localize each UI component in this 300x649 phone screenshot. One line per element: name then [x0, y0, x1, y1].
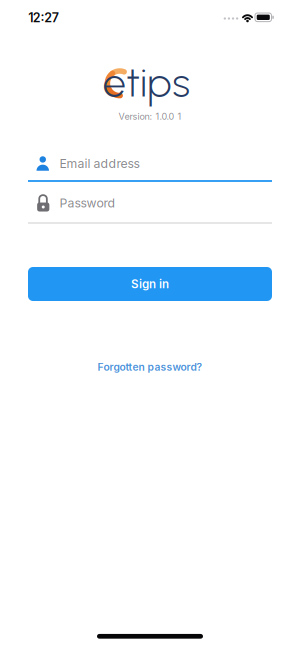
button[interactable]: Email address — [35, 154, 271, 172]
button[interactable]: Forgotten password? — [97, 361, 202, 373]
button[interactable]: Password — [35, 194, 271, 212]
button[interactable]: Sign in — [28, 267, 272, 301]
staticText: Password — [59, 196, 115, 210]
staticText: Forgotten password? — [97, 361, 202, 373]
staticText: Email address — [59, 156, 139, 171]
staticText: Version: 1.0.0 1 — [118, 111, 181, 122]
staticText: etips — [103, 57, 190, 107]
staticText: Sign in — [131, 277, 169, 291]
staticText: 12:27 — [28, 10, 59, 25]
